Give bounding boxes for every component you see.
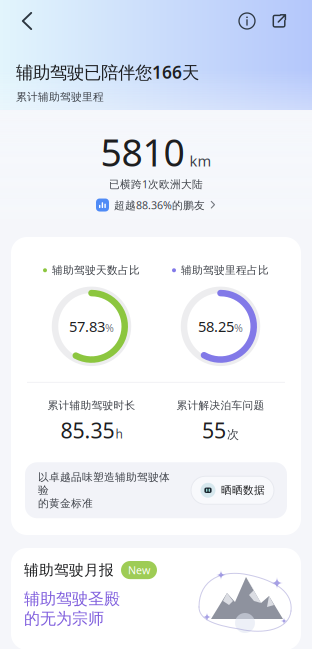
button[interactable]: 晒晒数据: [191, 476, 274, 504]
staticText: 累计解决泊车问题: [176, 399, 264, 412]
staticText: 辅助驾驶月报: [24, 561, 114, 579]
staticText: 55: [202, 416, 226, 444]
staticText: 57.83: [69, 317, 105, 336]
staticText: 次: [227, 427, 239, 442]
staticText: 辅助驾驶里程占比: [181, 264, 269, 277]
button[interactable]: 超越88.36%的鹏友: [96, 195, 216, 215]
staticText: %: [234, 321, 243, 335]
staticText: 已横跨1次欧洲大陆: [109, 177, 203, 191]
button[interactable]: 辅助驾驶月报: [11, 548, 301, 649]
staticText: 辅助驾驶天数占比: [52, 264, 140, 277]
staticText: 辅助驾驶圣殿 的无为宗师: [24, 589, 120, 628]
staticText: 58.25: [198, 317, 234, 336]
button[interactable]: Information: [230, 4, 264, 38]
button[interactable]: Back: [7, 1, 47, 41]
staticText: 5810: [100, 127, 184, 177]
button[interactable]: Share: [262, 4, 296, 38]
staticText: 辅助驾驶已陪伴您166天: [16, 60, 199, 83]
staticText: 累计辅助驾驶里程: [16, 90, 104, 103]
staticText: km: [189, 151, 211, 171]
staticText: New: [128, 563, 150, 577]
staticText: %: [105, 321, 114, 335]
staticText: 85.35: [60, 416, 114, 444]
staticText: 累计辅助驾驶时长: [47, 399, 135, 412]
staticText: h: [115, 426, 122, 442]
staticText: 超越88.36%的鹏友: [114, 198, 205, 212]
staticText: 以卓越品味塑造辅助驾驶体验 的黄金标准: [38, 471, 170, 510]
staticText: 晒晒数据: [221, 484, 265, 497]
